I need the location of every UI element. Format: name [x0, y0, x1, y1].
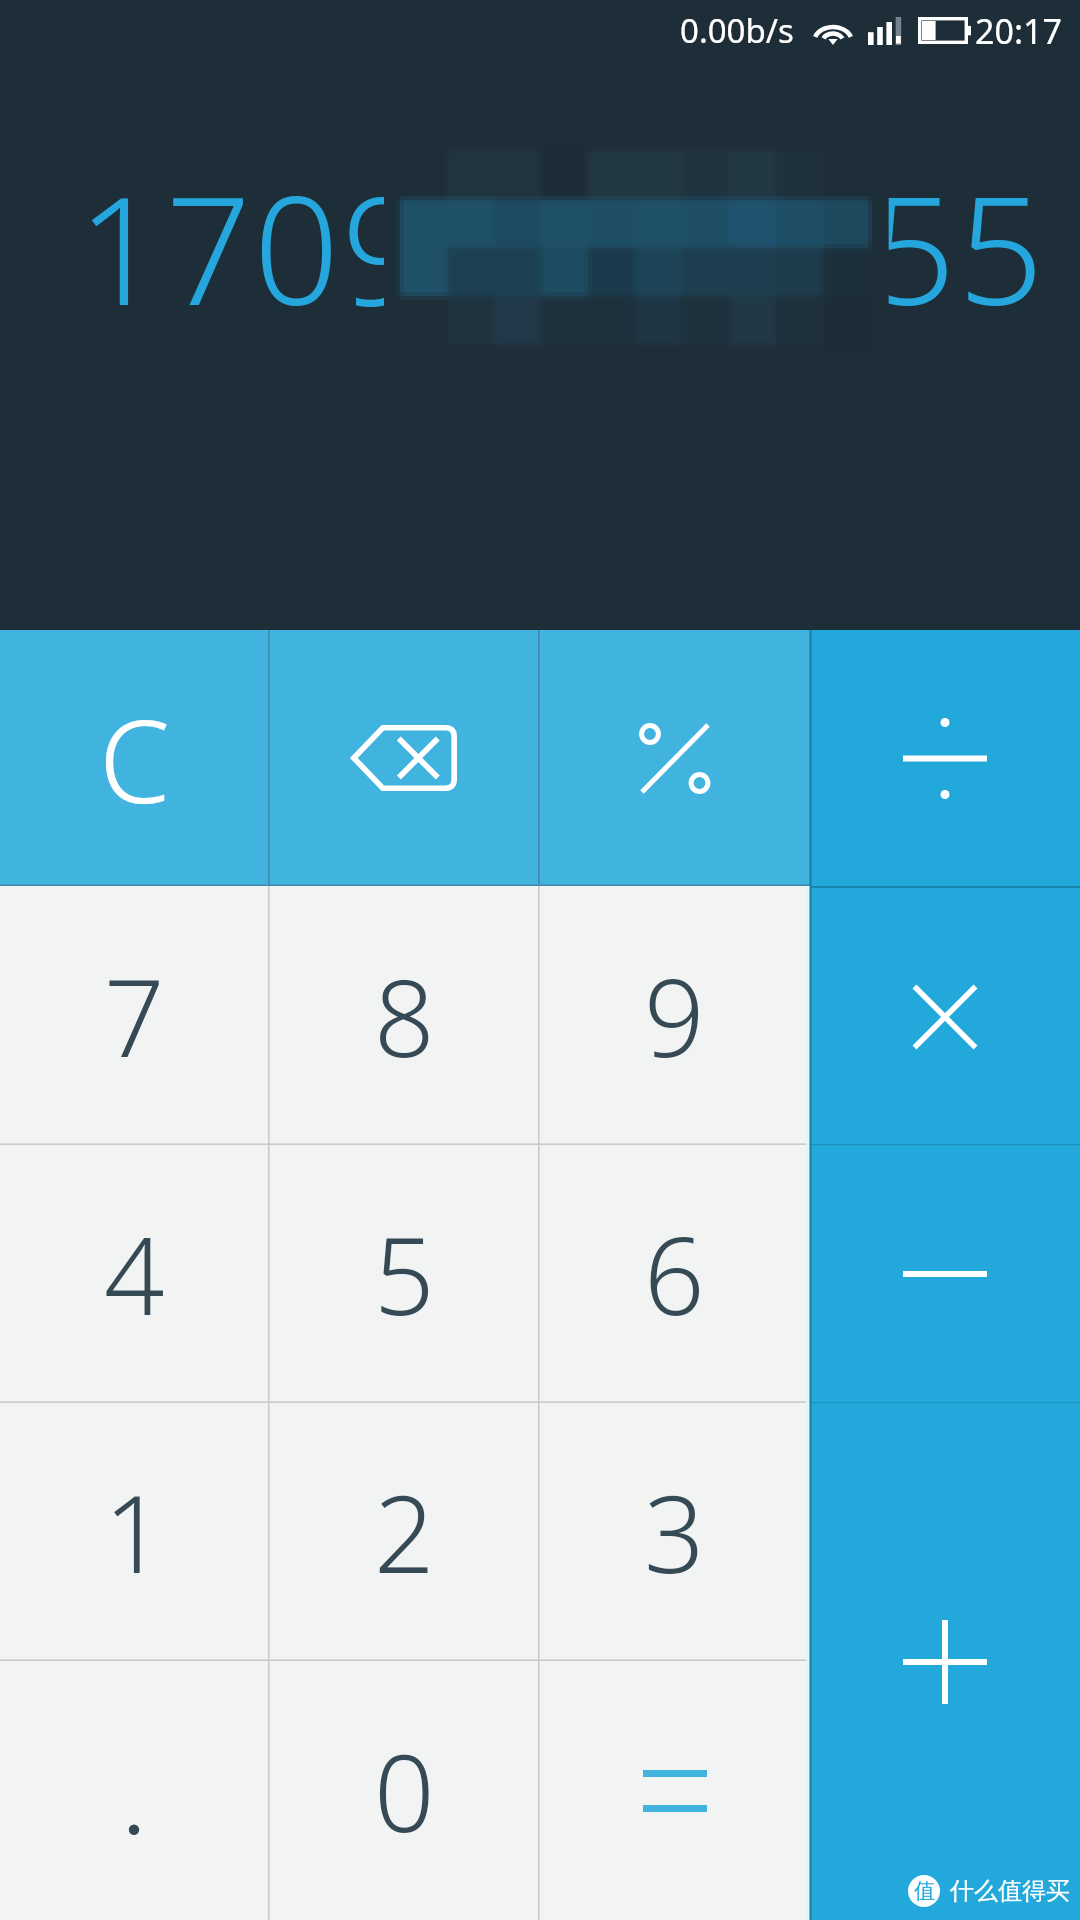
button[interactable]: 9	[539, 886, 810, 1145]
staticText: 9	[644, 944, 705, 1088]
button[interactable]: Divide	[810, 630, 1080, 886]
staticText: 值	[914, 1878, 935, 1904]
staticText: 6	[644, 1202, 705, 1346]
button[interactable]: 7	[0, 886, 269, 1145]
staticText: 什么值得买	[950, 1876, 1070, 1906]
staticText: 3	[644, 1460, 705, 1604]
staticText: 20:17	[975, 8, 1062, 54]
button[interactable]: Percent	[539, 630, 810, 886]
staticText: 0.00b/s	[680, 8, 794, 53]
button[interactable]: 5	[269, 1145, 539, 1403]
staticText: 4	[104, 1202, 165, 1346]
button[interactable]: 1	[0, 1403, 269, 1661]
button[interactable]: Clear	[0, 630, 269, 886]
staticText: C	[99, 681, 171, 836]
button[interactable]: Plus	[810, 1403, 1080, 1920]
staticText: 5	[374, 1202, 435, 1346]
button[interactable]: Backspace	[269, 630, 539, 886]
staticText: 8	[374, 944, 435, 1088]
staticText: 0	[374, 1719, 435, 1863]
button[interactable]: Decimal point	[0, 1661, 269, 1920]
staticText: 1	[104, 1460, 165, 1604]
staticText: 17098723455	[30, 145, 1046, 349]
button[interactable]: Equals	[539, 1661, 810, 1920]
button[interactable]: Multiply	[810, 888, 1080, 1145]
button[interactable]: Minus	[810, 1145, 1080, 1403]
button[interactable]: 2	[269, 1403, 539, 1661]
button[interactable]: 4	[0, 1145, 269, 1403]
button[interactable]: 3	[539, 1403, 810, 1661]
button[interactable]: 8	[269, 886, 539, 1145]
button[interactable]: 0	[269, 1661, 539, 1920]
staticText: 2	[374, 1460, 435, 1604]
button[interactable]: 6	[539, 1145, 810, 1403]
staticText: 7	[104, 944, 165, 1088]
